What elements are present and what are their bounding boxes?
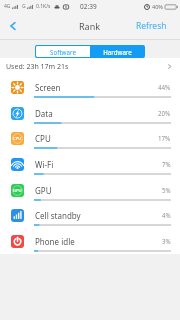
staticText: 40% — [152, 3, 163, 10]
button[interactable]: Used: 23h 17m 21s — [0, 58, 180, 75]
staticText: Refresh — [136, 20, 167, 32]
staticText: Software — [50, 48, 76, 56]
staticText: Used: 23h 17m 21s — [6, 62, 69, 72]
staticText: 02:39 — [80, 2, 97, 11]
staticText: 3% — [162, 237, 171, 245]
staticText: 4% — [162, 211, 171, 219]
staticText: Phone idle — [35, 236, 75, 247]
staticText: G — [22, 3, 26, 10]
staticText: GPU — [35, 185, 52, 196]
button[interactable]: Back — [0, 13, 26, 39]
button[interactable]: Hardware — [90, 46, 144, 57]
button[interactable]: Data — [0, 101, 180, 127]
button[interactable]: Wi-Fi — [0, 152, 180, 178]
staticText: 17% — [158, 134, 171, 142]
staticText: Wi-Fi — [35, 159, 54, 170]
staticText: 0.1K/s — [36, 3, 51, 10]
staticText: CPU — [35, 133, 51, 144]
button[interactable]: GPU — [0, 178, 180, 204]
button[interactable]: Screen — [0, 75, 180, 101]
staticText: Screen — [35, 82, 61, 93]
staticText: CPU — [13, 136, 22, 142]
staticText: Data — [35, 108, 53, 119]
staticText: 44% — [158, 83, 171, 91]
staticText: 4G — [4, 3, 11, 10]
staticText: 20% — [158, 109, 171, 117]
button[interactable]: CPU — [0, 126, 180, 152]
button[interactable]: Cell standby — [0, 203, 180, 229]
button[interactable]: Phone idle — [0, 229, 180, 255]
button[interactable]: Software — [36, 46, 90, 57]
button[interactable]: Refresh — [123, 16, 180, 36]
staticText: Hardware — [103, 48, 132, 56]
staticText: 5% — [162, 186, 171, 194]
staticText: GPU — [13, 188, 22, 194]
staticText: Rank — [79, 20, 101, 32]
staticText: 7% — [162, 160, 171, 168]
staticText: Cell standby — [35, 210, 81, 221]
